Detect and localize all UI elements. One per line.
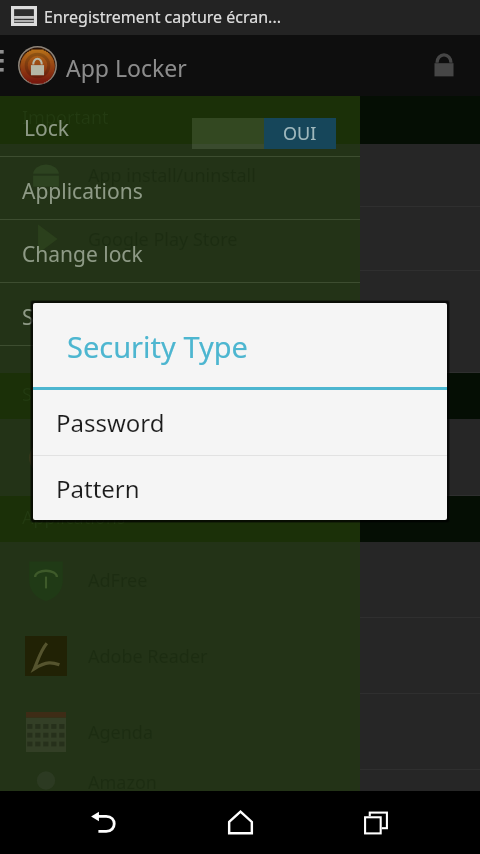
staticText: App Locker xyxy=(66,52,187,83)
staticText: App install/uninstall xyxy=(88,163,256,188)
staticText: Password xyxy=(56,406,165,439)
button[interactable] xyxy=(0,419,480,495)
button[interactable]: Back xyxy=(72,791,136,854)
button[interactable] xyxy=(0,618,480,693)
button[interactable]: Lock xyxy=(0,96,360,156)
staticText: Pattern xyxy=(56,472,140,505)
staticText: Important xyxy=(22,105,109,130)
staticText: Enregistrement capture écran... xyxy=(44,6,281,28)
button[interactable]: Lock all apps xyxy=(416,35,472,96)
button[interactable]: Settings xyxy=(0,283,360,345)
staticText: Applications xyxy=(22,177,143,206)
staticText: Applications xyxy=(22,505,126,530)
staticText: Google Play Store xyxy=(88,227,238,252)
staticText: Security Type xyxy=(67,327,248,366)
button[interactable]: Recent apps xyxy=(344,791,408,854)
button[interactable]: Change lock xyxy=(0,220,360,282)
button[interactable] xyxy=(0,542,480,617)
staticText: Change lock xyxy=(22,240,143,269)
button[interactable]: Home xyxy=(208,791,272,854)
button[interactable]: Pattern xyxy=(33,456,447,520)
button[interactable] xyxy=(0,694,480,769)
staticText: Lock xyxy=(24,114,70,143)
button[interactable]: Open navigation menu xyxy=(0,50,12,80)
staticText: System xyxy=(22,382,84,407)
button[interactable] xyxy=(0,207,480,270)
staticText: Settings xyxy=(22,303,102,332)
button[interactable]: Applications xyxy=(0,157,360,219)
button[interactable]: Password xyxy=(33,390,447,455)
button[interactable] xyxy=(0,144,480,206)
staticText: Settings xyxy=(88,445,157,470)
staticText: OUI xyxy=(283,121,317,146)
button[interactable] xyxy=(0,271,480,372)
button[interactable] xyxy=(0,770,480,791)
